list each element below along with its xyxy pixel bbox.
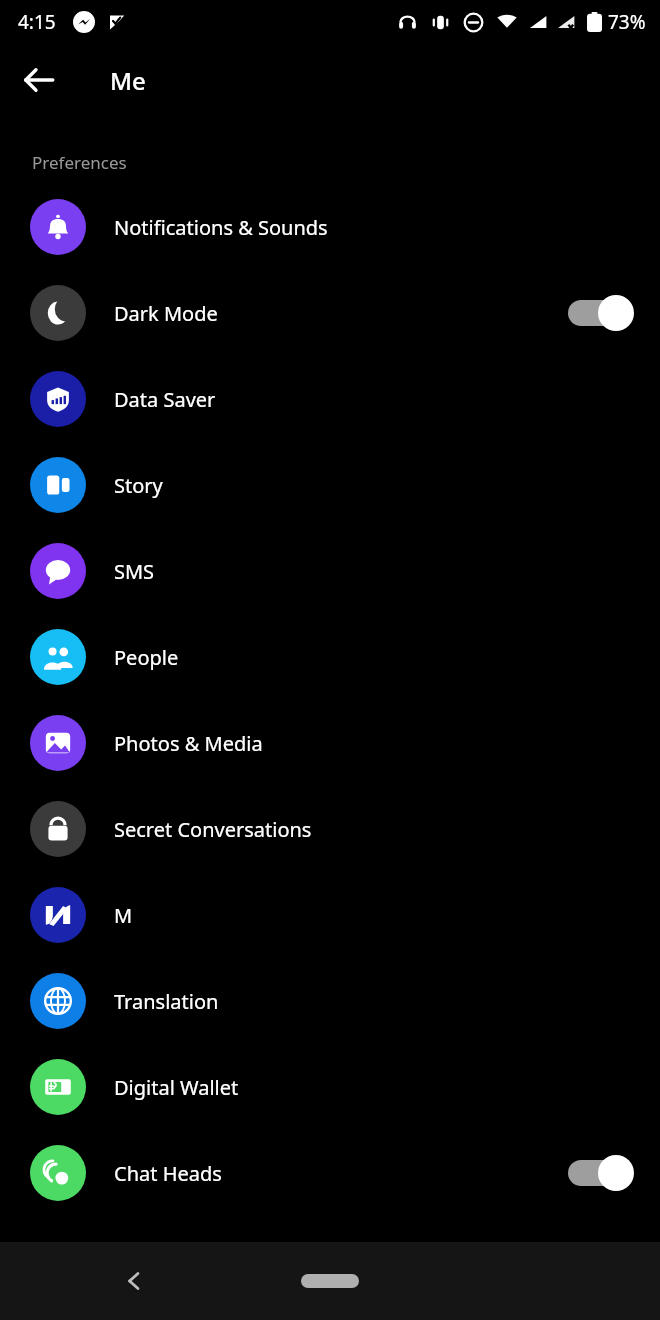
staticText: Data Saver [114, 386, 216, 413]
button[interactable]: People [0, 614, 660, 700]
button[interactable]: Home [294, 1270, 366, 1292]
staticText: Dark Mode [114, 300, 218, 327]
button[interactable]: Chat Heads [0, 1130, 660, 1216]
staticText: 4:15 [18, 9, 56, 35]
staticText: Me [110, 64, 146, 97]
staticText: Digital Wallet [114, 1074, 239, 1101]
staticText: Translation [114, 988, 219, 1015]
button[interactable]: Secret Conversations [0, 786, 660, 872]
staticText: People [114, 644, 179, 671]
staticText: SMS [114, 558, 155, 585]
staticText: Photos & Media [114, 730, 263, 757]
button[interactable]: Photos & Media [0, 700, 660, 786]
staticText: 73% [608, 9, 646, 35]
button[interactable]: Back [110, 1257, 158, 1305]
button[interactable]: Story [0, 442, 660, 528]
staticText: Story [114, 472, 163, 499]
button[interactable]: M [0, 872, 660, 958]
button[interactable]: Data Saver [0, 356, 660, 442]
button[interactable]: Translation [0, 958, 660, 1044]
staticText: Secret Conversations [114, 816, 312, 843]
staticText: Chat Heads [114, 1160, 222, 1187]
button[interactable]: Back [10, 51, 68, 109]
staticText: M [114, 902, 133, 929]
button[interactable]: Digital Wallet [0, 1044, 660, 1130]
button[interactable]: Notifications & Sounds [0, 184, 660, 270]
button[interactable]: Dark Mode [0, 270, 660, 356]
staticText: Notifications & Sounds [114, 214, 328, 241]
staticText: Preferences [32, 151, 127, 174]
button[interactable]: SMS [0, 528, 660, 614]
